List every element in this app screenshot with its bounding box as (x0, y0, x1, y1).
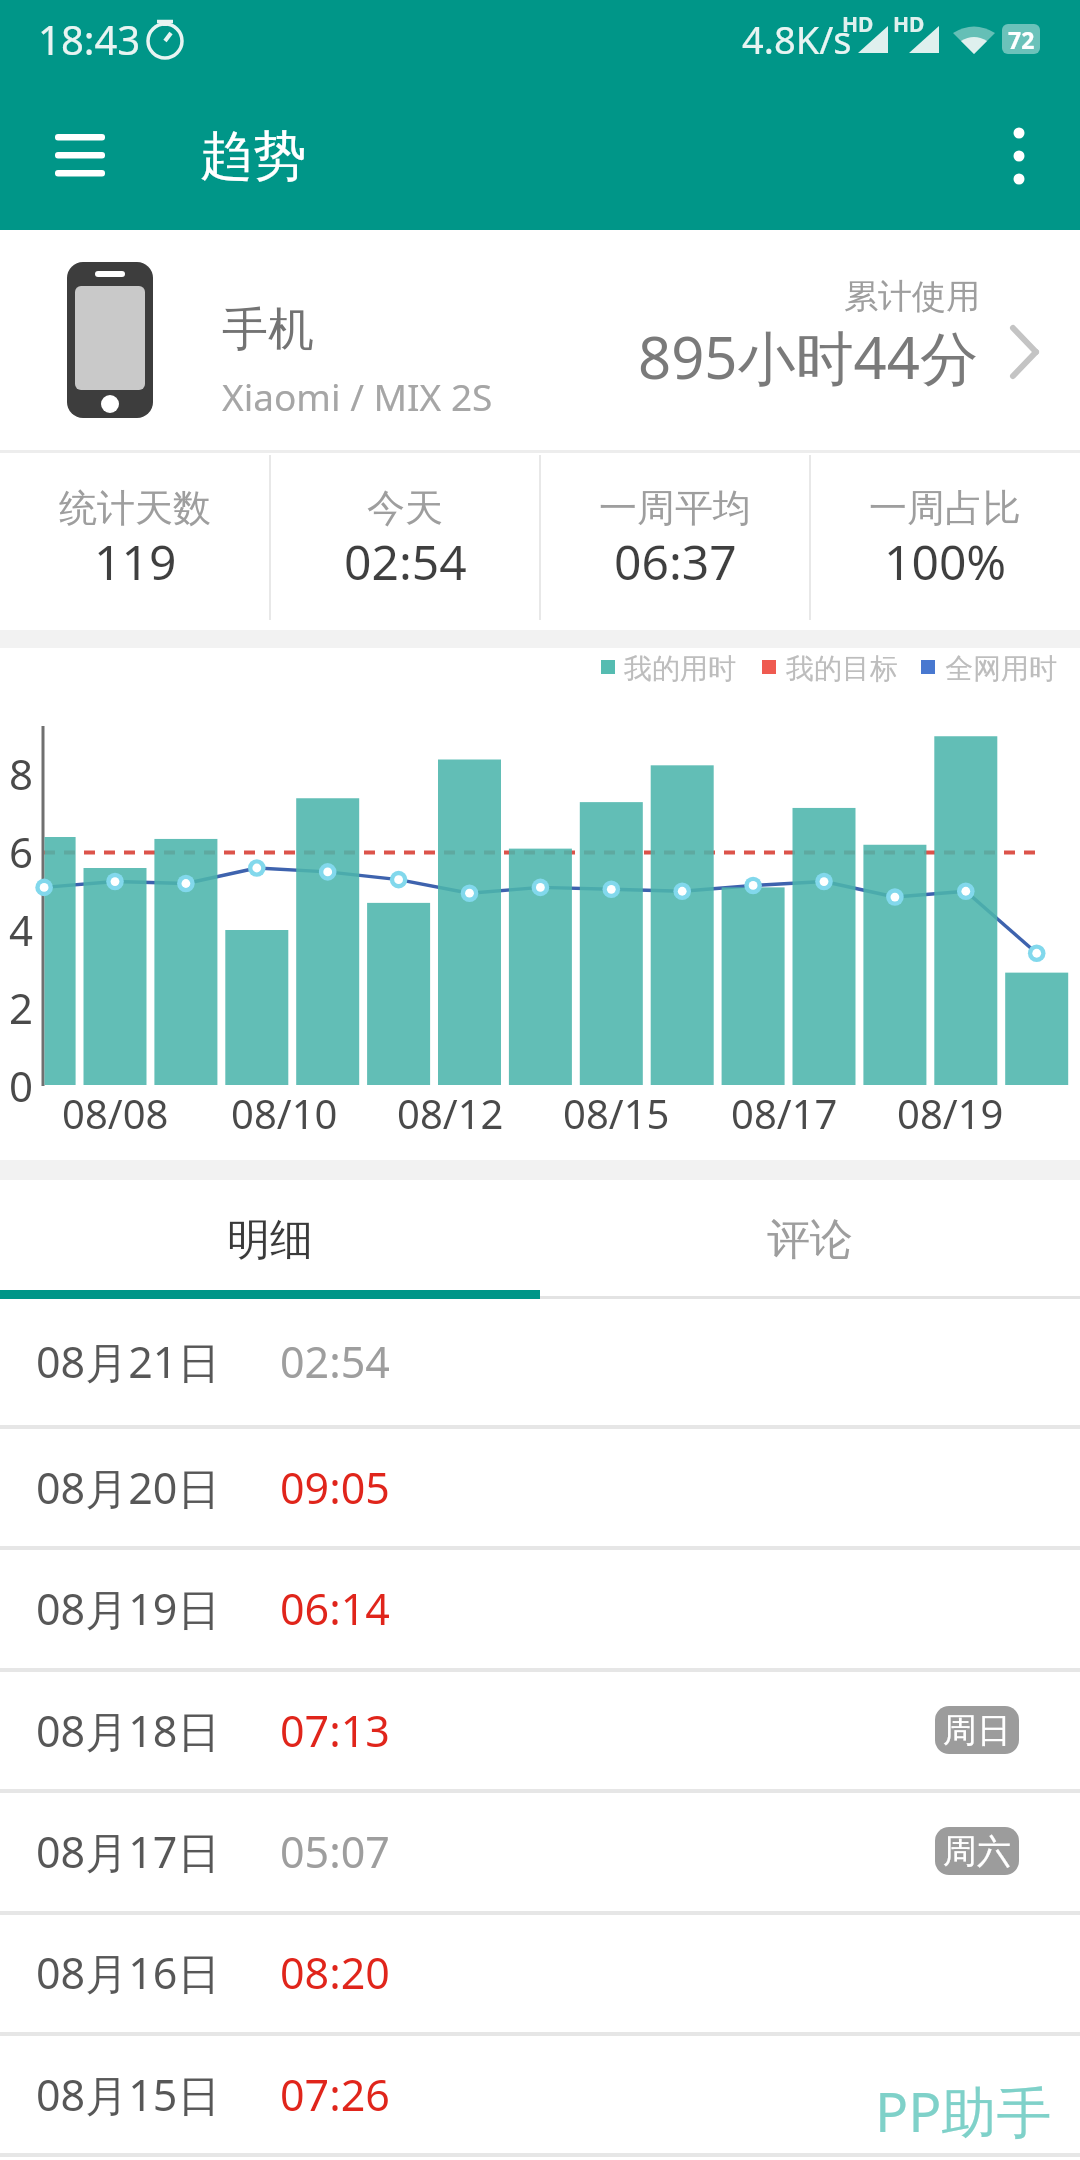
staticText: 02:54 (344, 529, 467, 594)
button[interactable] (46, 125, 114, 187)
staticText: 我的目标 (786, 651, 898, 686)
staticText: HD (842, 10, 874, 39)
staticText: 100% (884, 529, 1007, 594)
staticText: 07:13 (280, 1701, 390, 1760)
staticText: 手机 (222, 301, 314, 359)
staticText: 08/19 (897, 1086, 1004, 1140)
button[interactable]: 评论 (540, 1180, 1080, 1300)
staticText: 4.8K/s (742, 13, 852, 65)
staticText: 06:14 (280, 1579, 390, 1638)
staticText: 评论 (767, 1213, 853, 1267)
staticText: 08月21日 (36, 1332, 221, 1391)
staticText: 02:54 (280, 1332, 390, 1391)
staticText: 周日 (943, 1709, 1011, 1752)
staticText: 08/15 (563, 1086, 670, 1140)
staticText: PP助手 (875, 2073, 1052, 2148)
staticText: 08月20日 (36, 1458, 221, 1517)
staticText: 08/08 (62, 1086, 169, 1140)
staticText: Xiaomi / MIX 2S (222, 371, 493, 421)
button[interactable] (0, 2035, 1080, 2153)
staticText: 统计天数 (59, 484, 211, 532)
button[interactable] (0, 230, 1080, 452)
staticText: 我的用时 (624, 651, 736, 686)
staticText: 18:43 (38, 12, 141, 66)
staticText: 08:20 (280, 1943, 390, 2002)
staticText: 08/17 (731, 1086, 838, 1140)
staticText: 明细 (227, 1213, 313, 1267)
staticText: 08/12 (397, 1086, 504, 1140)
staticText: 一周占比 (869, 484, 1021, 532)
staticText: 08月18日 (36, 1701, 221, 1760)
button[interactable]: 明细 (0, 1180, 540, 1300)
staticText: 一周平均 (599, 484, 751, 532)
button[interactable] (0, 1914, 1080, 2032)
button[interactable] (0, 1671, 1080, 1789)
staticText: HD (893, 10, 925, 39)
staticText: 8 (9, 745, 34, 802)
staticText: 趋势 (200, 123, 306, 190)
staticText: 08月17日 (36, 1822, 221, 1881)
staticText: 05:07 (280, 1822, 390, 1881)
staticText: 0 (9, 1057, 34, 1114)
staticText: 895小时44分 (638, 317, 978, 396)
staticText: 08月16日 (36, 1943, 221, 2002)
staticText: 08月15日 (36, 2065, 221, 2124)
staticText: 6 (9, 823, 34, 880)
staticText: 全网用时 (945, 651, 1057, 686)
staticText: 08月19日 (36, 1579, 221, 1638)
button[interactable] (0, 1428, 1080, 1546)
staticText: 周六 (943, 1830, 1011, 1873)
button[interactable] (0, 1793, 1080, 1911)
staticText: 2 (9, 979, 34, 1036)
staticText: 72 (1008, 24, 1035, 54)
staticText: 累计使用 (844, 275, 980, 318)
button[interactable] (0, 1550, 1080, 1668)
staticText: 4 (9, 901, 34, 958)
staticText: 07:26 (280, 2065, 390, 2124)
staticText: 08/10 (231, 1086, 338, 1140)
button[interactable] (990, 118, 1050, 198)
button[interactable] (0, 1299, 1080, 1425)
staticText: 今天 (367, 484, 443, 532)
staticText: 06:37 (614, 529, 737, 594)
staticText: 119 (94, 529, 177, 594)
staticText: 09:05 (280, 1458, 390, 1517)
